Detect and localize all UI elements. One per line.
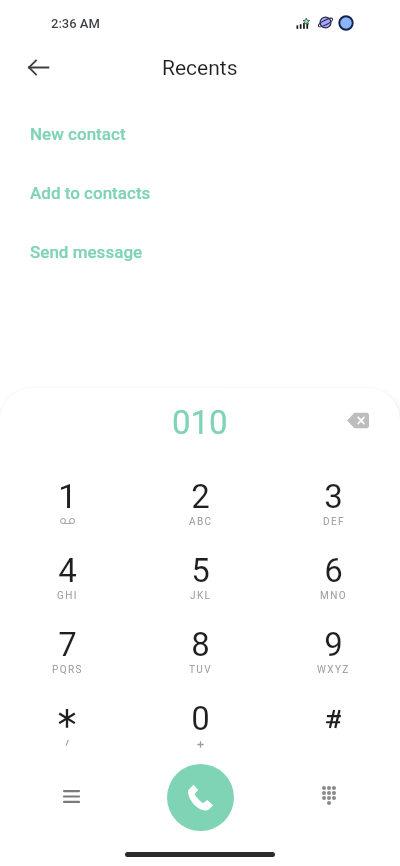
button[interactable]: Backspace	[336, 398, 380, 442]
staticText: JKL	[190, 590, 212, 602]
button[interactable]: 4	[0, 551, 134, 625]
button[interactable]: Add to contacts	[0, 163, 400, 222]
staticText: GHI	[57, 590, 78, 602]
staticText: 8	[191, 625, 210, 664]
button[interactable]: Call	[167, 764, 234, 831]
button[interactable]: 1	[0, 477, 134, 551]
staticText: 2	[191, 477, 210, 516]
staticText: 9	[324, 625, 343, 664]
button[interactable]: 6	[267, 551, 400, 625]
staticText: 7	[58, 625, 77, 664]
button[interactable]	[0, 699, 134, 773]
staticText: MNO	[320, 590, 347, 602]
button[interactable]: 7	[0, 625, 134, 699]
button[interactable]: 2	[134, 477, 267, 551]
staticText: New contact	[30, 124, 126, 144]
button[interactable]: 3	[267, 477, 400, 551]
staticText: 3	[324, 477, 343, 516]
button[interactable]: Dialpad	[309, 775, 349, 815]
staticText: 6	[324, 551, 343, 590]
staticText: TUV	[189, 664, 213, 676]
button[interactable]: Call history	[51, 776, 91, 816]
staticText: 4	[58, 551, 77, 590]
staticText: WXYZ	[317, 664, 350, 676]
staticText: 010	[172, 403, 228, 442]
button[interactable]: Back	[18, 47, 58, 87]
staticText: Send message	[30, 242, 143, 262]
button[interactable]: 0	[134, 699, 267, 773]
button[interactable]: New contact	[0, 104, 400, 163]
staticText: Recents	[162, 56, 238, 81]
staticText: Add to contacts	[30, 183, 151, 203]
button[interactable]	[267, 699, 400, 773]
button[interactable]: Send message	[0, 222, 400, 281]
staticText: ABC	[189, 516, 213, 528]
staticText: 5	[191, 551, 210, 590]
button[interactable]: 9	[267, 625, 400, 699]
staticText: 2:36 AM	[51, 16, 100, 31]
staticText: 0	[191, 699, 210, 738]
button[interactable]: 5	[134, 551, 267, 625]
staticText: DEF	[323, 516, 345, 528]
staticText: 1	[58, 477, 77, 516]
button[interactable]: 8	[134, 625, 267, 699]
staticText: PQRS	[52, 664, 83, 676]
